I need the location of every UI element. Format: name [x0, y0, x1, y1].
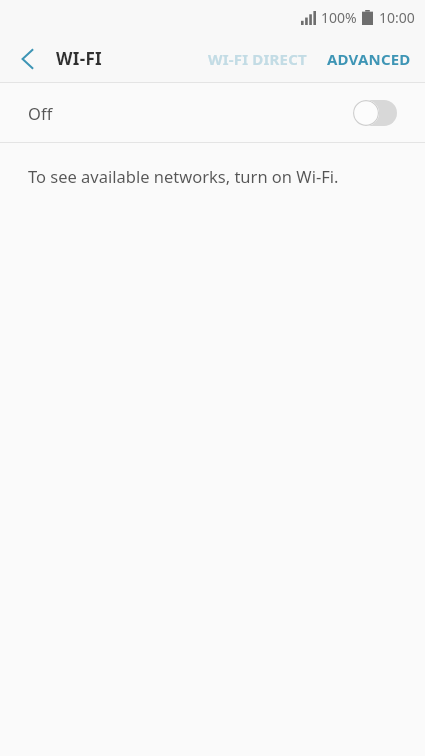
button[interactable]: WI-FI DIRECT: [198, 35, 317, 82]
staticText: WI-FI DIRECT: [208, 49, 307, 69]
staticText: To see available networks, turn on Wi-Fi…: [28, 165, 339, 187]
staticText: Off: [28, 102, 53, 124]
button[interactable]: Back: [0, 35, 56, 82]
staticText: 10:00: [379, 8, 415, 27]
button[interactable]: ADVANCED: [317, 35, 425, 82]
staticText: 100%: [321, 8, 357, 27]
staticText: ADVANCED: [327, 49, 411, 69]
staticText: WI-FI: [56, 47, 102, 70]
button[interactable]: Off: [0, 83, 425, 142]
